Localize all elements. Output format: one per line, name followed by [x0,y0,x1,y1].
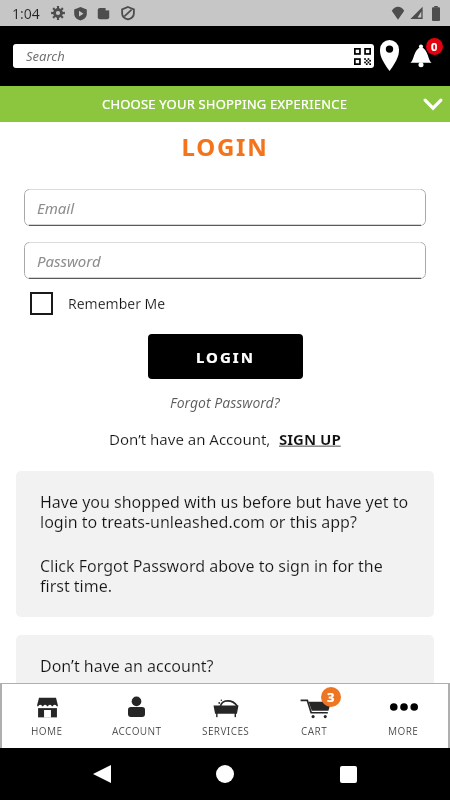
staticText: HOME [31,724,63,738]
staticText: ACCOUNT [112,724,162,738]
button[interactable]: MORE [359,684,448,748]
button[interactable]: Forgot Password? [170,393,280,412]
button[interactable]: Remember Me [30,292,166,315]
button[interactable]: SIGN UP [279,429,341,449]
staticText: 1:04 [12,4,40,23]
button[interactable]: Home [204,753,246,795]
staticText: Email [37,198,75,218]
staticText: MORE [388,724,419,738]
button[interactable]: ACCOUNT [92,684,181,748]
button[interactable]: SERVICES [181,684,270,748]
staticText: Don’t have an Account, [109,429,279,449]
staticText: CART [301,724,328,738]
staticText: CHOOSE YOUR SHOPPING EXPERIENCE [102,95,348,113]
staticText: Click Forgot Password above to sign in f… [40,555,416,596]
staticText: Password [37,251,101,271]
button[interactable]: 3 [270,684,359,748]
staticText: LOGIN [0,130,450,163]
button[interactable]: Store locator [374,34,404,78]
other: Scan QR code [354,48,371,65]
button[interactable]: Recents [327,753,369,795]
staticText: LOGIN [196,347,255,367]
staticText: SERVICES [202,724,250,738]
staticText: 3 [327,688,335,706]
staticText: Remember Me [68,294,166,313]
staticText: Search [26,47,65,65]
button[interactable]: Password [24,242,426,279]
button[interactable]: Search [13,44,374,68]
button[interactable]: Notifications [404,34,438,78]
button[interactable]: HOME [2,684,92,748]
button[interactable]: Email [24,189,426,226]
staticText: Have you shopped with us before but have… [40,491,416,532]
button[interactable]: CHOOSE YOUR SHOPPING EXPERIENCE [0,86,450,122]
button[interactable]: Back [81,753,123,795]
staticText: Don’t have an account? [40,655,214,677]
staticText: 0 [431,39,438,54]
button[interactable]: LOGIN [148,334,303,379]
